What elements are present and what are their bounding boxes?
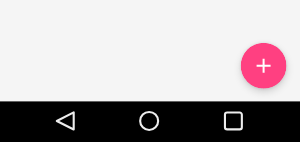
button[interactable]: Add [241,43,287,89]
button[interactable]: Home [131,103,167,139]
button[interactable]: Back [47,103,83,139]
button[interactable]: Recents [215,103,251,139]
